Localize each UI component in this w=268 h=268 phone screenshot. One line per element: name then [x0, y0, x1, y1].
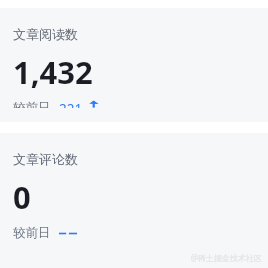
staticText: 221: [59, 100, 83, 108]
staticText: 文章评论数: [13, 151, 78, 167]
staticText: 0: [13, 176, 31, 218]
staticText: @稀土掘金技术社区: [190, 252, 262, 263]
staticText: 文章阅读数: [13, 26, 78, 42]
staticText: 较前日: [13, 225, 51, 241]
other: Increase: [88, 100, 99, 108]
button[interactable]: 文章评论数: [0, 133, 268, 268]
button[interactable]: 文章阅读数: [0, 8, 268, 122]
staticText: 较前日: [13, 100, 51, 108]
staticText: 1,432: [13, 51, 93, 93]
